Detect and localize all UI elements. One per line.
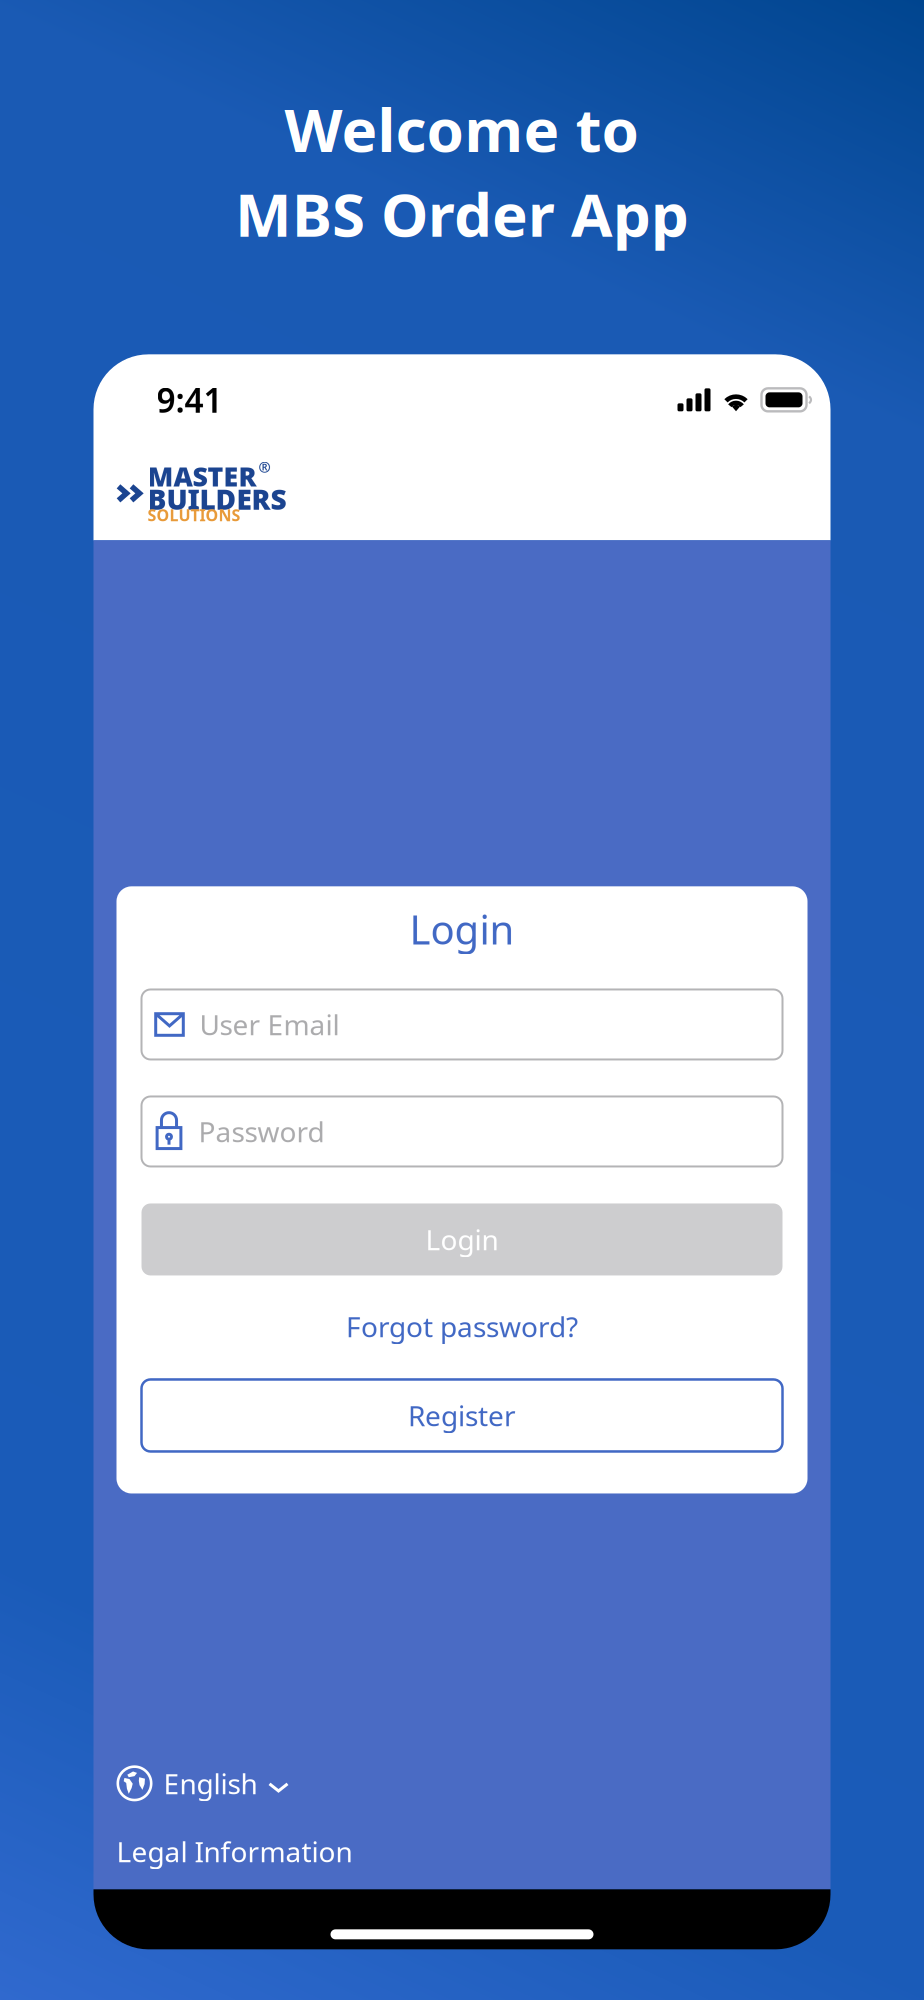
staticText: Forgot password? [346, 1308, 578, 1345]
staticText: SOLUTIONS [147, 504, 240, 526]
staticText: Register [408, 1397, 516, 1434]
staticText: Welcome to [284, 89, 639, 169]
button[interactable]: Register [141, 1379, 782, 1451]
button[interactable]: English [93, 1761, 830, 1805]
staticText: English [163, 1765, 257, 1802]
staticText: Password [198, 1113, 324, 1150]
staticText: Login [425, 1221, 498, 1258]
staticText: MBS Order App [235, 174, 689, 253]
staticText: BUILDERS [147, 480, 286, 518]
button[interactable]: Login [141, 1203, 782, 1275]
button[interactable]: User Email [141, 989, 782, 1059]
staticText: Login [409, 902, 514, 955]
button[interactable]: Password [141, 1096, 782, 1166]
staticText: User Email [199, 1006, 339, 1043]
staticText: MASTER [147, 458, 256, 494]
button[interactable]: Legal Information [93, 1833, 830, 1869]
staticText: 9:41 [156, 378, 222, 422]
staticText: ® [258, 457, 270, 477]
staticText: Legal Information [116, 1833, 352, 1870]
button[interactable]: Forgot password? [141, 1301, 782, 1351]
